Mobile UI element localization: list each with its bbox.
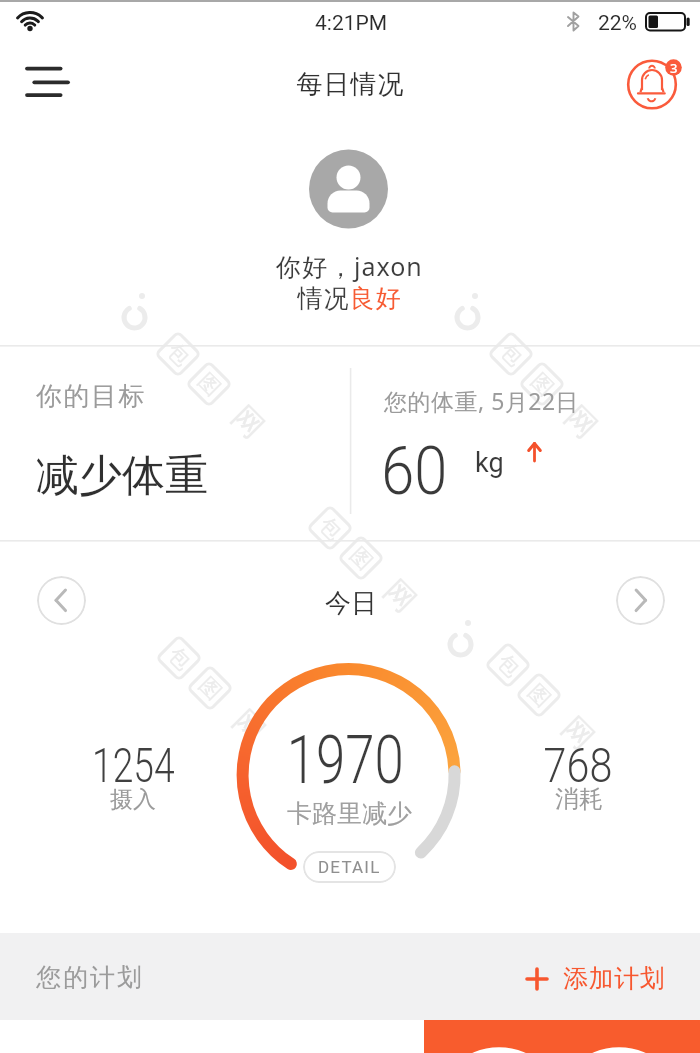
staticText: 包 <box>163 642 196 675</box>
staticText: 包 <box>495 338 528 371</box>
staticText: 你的目标 <box>35 380 145 413</box>
staticText: 网 <box>557 398 605 446</box>
staticText: 网 <box>554 709 602 757</box>
staticText: 图 <box>526 368 559 401</box>
staticText: 你好，jaxon <box>276 249 423 283</box>
staticText: 包 <box>492 649 525 682</box>
button[interactable]: DETAIL <box>303 851 396 883</box>
staticText: 减少体重 <box>36 449 208 503</box>
staticText: 60 <box>381 432 448 511</box>
staticText: 卡路里减少 <box>287 798 412 829</box>
staticText: 1254 <box>92 737 175 793</box>
staticText: 包 <box>162 338 195 371</box>
button[interactable] <box>37 576 86 625</box>
staticText: 图 <box>193 368 226 401</box>
staticText: 今日 <box>325 587 377 620</box>
staticText: 包 <box>314 512 347 545</box>
staticText: 您的计划 <box>35 962 143 993</box>
staticText: 每日情况 <box>296 68 404 101</box>
staticText: 1970 <box>287 722 404 799</box>
staticText: DETAIL <box>318 857 381 877</box>
staticText: 22% <box>598 11 637 36</box>
staticText: 网 <box>376 572 424 620</box>
button[interactable]: 3 <box>620 52 686 116</box>
staticText: 网 <box>225 702 273 750</box>
staticText: kg <box>475 447 504 479</box>
staticText: 摄入 <box>110 785 156 814</box>
staticText: 您的体重, 5月22日 <box>384 385 580 416</box>
staticText: 添加计划 <box>563 963 665 994</box>
button[interactable] <box>616 576 665 625</box>
staticText: 768 <box>544 737 612 793</box>
staticText: 网 <box>224 398 272 446</box>
button[interactable] <box>424 1020 700 1053</box>
staticText: 图 <box>345 542 378 575</box>
staticText: 4:21PM <box>315 11 388 36</box>
staticText: 情况良好 <box>297 283 401 314</box>
button[interactable] <box>18 58 76 106</box>
button[interactable]: 添加计划 <box>510 950 680 1006</box>
staticText: 消耗 <box>555 784 603 814</box>
staticText: 图 <box>194 672 227 705</box>
staticText: 图 <box>523 679 556 712</box>
staticText: 3 <box>670 59 678 77</box>
